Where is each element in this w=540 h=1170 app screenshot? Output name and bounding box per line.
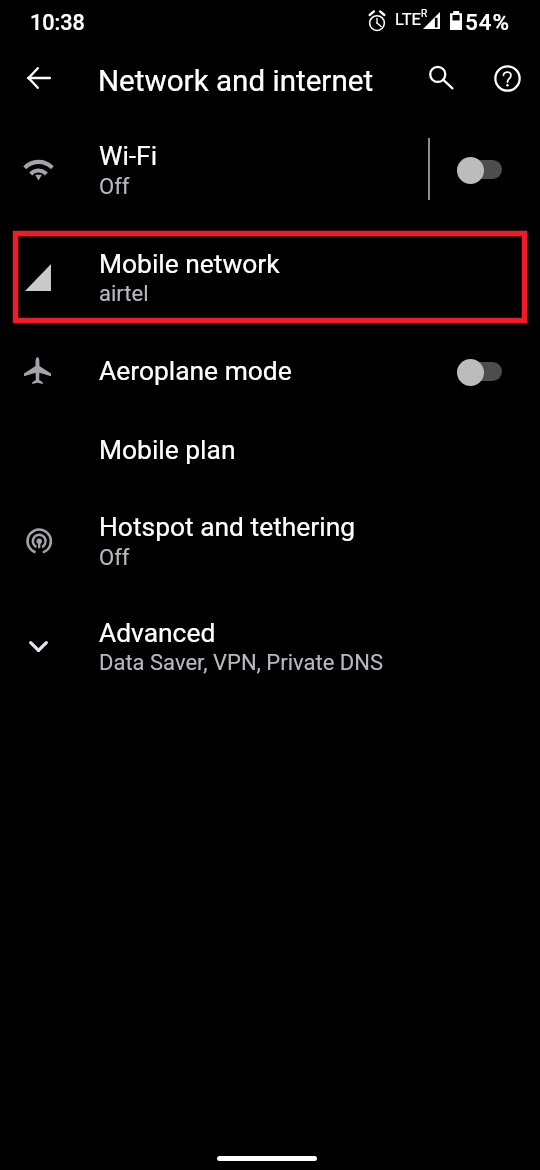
staticText: 10:38 [30, 10, 85, 35]
staticText: Network and internet [98, 64, 374, 99]
other: Battery 54 percent [450, 11, 462, 30]
staticText: R [421, 8, 428, 20]
staticText: Advanced [99, 618, 216, 649]
button[interactable]: Back [15, 54, 63, 102]
staticText: Mobile plan [99, 435, 236, 466]
button[interactable]: Aeroplane mode toggle [453, 348, 513, 396]
staticText: LTE [395, 10, 421, 29]
staticText: Mobile network [99, 249, 280, 280]
button[interactable]: Aeroplane mode [0, 332, 540, 411]
other: Alarm set [369, 11, 385, 30]
button[interactable]: Wi-Fi toggle [453, 146, 513, 194]
staticText: Off [99, 545, 130, 571]
staticText: Off [99, 174, 130, 200]
button[interactable]: Search [417, 54, 465, 102]
staticText: Data Saver, VPN, Private DNS [99, 650, 384, 676]
other: Mobile signal [423, 12, 440, 29]
staticText: 54% [465, 9, 510, 35]
button[interactable]: Advanced [0, 608, 540, 708]
button[interactable]: Mobile plan [0, 411, 540, 503]
staticText: airtel [99, 281, 149, 307]
staticText: Wi-Fi [99, 141, 158, 172]
staticText: Hotspot and tethering [99, 512, 356, 543]
button[interactable]: Wi-Fi [0, 132, 540, 240]
button[interactable]: Help [483, 54, 531, 102]
staticText: Aeroplane mode [99, 356, 292, 387]
button[interactable]: Hotspot and tethering [0, 503, 540, 608]
button[interactable]: Mobile network [0, 240, 540, 332]
